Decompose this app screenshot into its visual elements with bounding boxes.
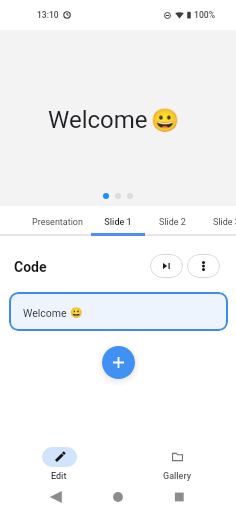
button[interactable]: More options — [187, 254, 220, 278]
button[interactable]: Gallery — [118, 441, 236, 483]
staticText: Welcome — [23, 307, 67, 319]
staticText: Welcome — [48, 106, 148, 134]
staticText: Slide 1 — [104, 217, 132, 228]
button[interactable]: Play slideshow — [150, 254, 183, 278]
staticText: Slide 2 — [159, 217, 186, 228]
staticText: Edit — [51, 471, 67, 482]
button[interactable]: Add — [102, 346, 135, 379]
button[interactable]: Slide 3 — [199, 206, 236, 236]
staticText: 13:10 — [37, 10, 59, 20]
staticText: Code — [14, 259, 47, 275]
staticText: Slide 3 — [213, 217, 236, 228]
staticText: 100% — [194, 10, 215, 20]
button[interactable]: Slide 2 — [145, 206, 199, 236]
button[interactable]: Presentation — [23, 206, 91, 236]
staticText: Presentation — [32, 217, 83, 228]
button[interactable]: Welcome — [9, 292, 228, 331]
staticText: Gallery — [163, 471, 192, 482]
staticText: 😀 — [151, 107, 180, 133]
button[interactable]: Edit — [0, 441, 118, 483]
staticText: 😀 — [70, 307, 83, 319]
button[interactable]: Slide 1 — [91, 206, 145, 236]
